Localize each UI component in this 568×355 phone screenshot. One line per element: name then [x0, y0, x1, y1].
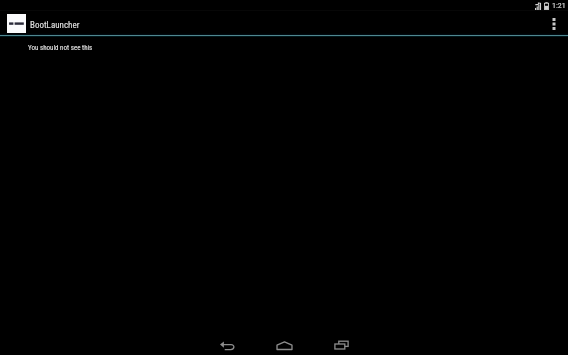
button[interactable]: Home [264, 335, 304, 355]
staticText: BootLauncher [30, 20, 80, 31]
button[interactable]: More options [540, 10, 568, 35]
staticText: 1:21 [552, 1, 566, 10]
button[interactable]: Recent apps [321, 335, 361, 355]
staticText: You should not see this [28, 44, 93, 52]
button[interactable]: Back [207, 335, 247, 355]
